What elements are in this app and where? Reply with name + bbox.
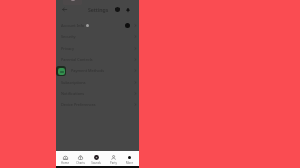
- staticText: Subscriptions: [61, 80, 86, 85]
- button[interactable]: Security: [113, 5, 122, 14]
- staticText: Notifications: [61, 91, 85, 96]
- staticText: Security: [61, 34, 76, 39]
- staticText: Party: [110, 161, 117, 165]
- staticText: Device Preferences: [61, 102, 96, 107]
- staticText: More: [126, 161, 133, 165]
- button[interactable]: Sounds: [88, 155, 104, 165]
- staticText: Payment Methods: [71, 68, 105, 73]
- staticText: Privacy: [61, 46, 74, 51]
- button[interactable]: Notifications: [123, 5, 132, 14]
- button[interactable]: Home: [57, 155, 73, 165]
- button[interactable]: Charts: [72, 155, 88, 165]
- button[interactable]: Back: [60, 5, 69, 14]
- button[interactable]: Party: [105, 155, 121, 165]
- button[interactable]: Payment Methods: [56, 65, 139, 76]
- staticText: Parental Controls: [61, 57, 93, 62]
- staticText: Charts: [76, 161, 85, 165]
- button[interactable]: Account Info: [56, 20, 139, 31]
- staticText: Account Info: [61, 23, 85, 28]
- staticText: Sounds: [91, 161, 101, 165]
- button[interactable]: More: [121, 155, 137, 165]
- staticText: Home: [61, 161, 69, 165]
- staticText: Settings: [88, 7, 109, 14]
